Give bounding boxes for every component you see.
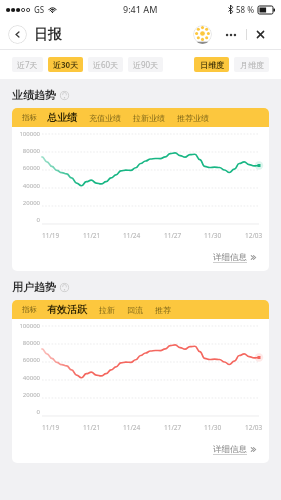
button[interactable]: 总业绩 — [47, 111, 77, 124]
staticText: 近90天 — [133, 59, 159, 70]
button[interactable]: Brand logo — [193, 25, 212, 44]
staticText: 日维度 — [200, 60, 224, 70]
staticText: 近7天 — [17, 59, 38, 70]
staticText: 近30天 — [53, 59, 79, 70]
staticText: 业绩趋势 — [12, 88, 56, 102]
button[interactable]: 指标 — [22, 305, 37, 314]
staticText: GS — [34, 4, 45, 15]
staticText: 回流 — [127, 305, 143, 315]
button[interactable]: 推荐 — [155, 305, 171, 315]
button[interactable]: 指标 — [22, 113, 37, 122]
button[interactable]: 日维度 — [194, 57, 229, 72]
button[interactable]: More options — [216, 25, 246, 44]
staticText: 11/27 — [164, 231, 182, 240]
staticText: 推荐 — [155, 305, 171, 315]
button[interactable]: Back — [8, 25, 27, 44]
staticText: 11/24 — [123, 231, 141, 240]
button[interactable]: 充值业绩 — [89, 113, 121, 123]
staticText: 58 % — [236, 4, 255, 15]
button[interactable]: 回流 — [127, 305, 143, 315]
staticText: 12/03 — [245, 231, 263, 240]
button[interactable]: 详细信息 — [213, 252, 257, 263]
staticText: 60000 — [22, 164, 40, 172]
staticText: 推荐业绩 — [177, 113, 209, 123]
staticText: 11/30 — [204, 423, 222, 432]
staticText: 80000 — [22, 339, 40, 347]
button[interactable]: 拉新 — [99, 305, 115, 315]
staticText: 11/27 — [164, 423, 182, 432]
button[interactable]: 有效活跃 — [47, 303, 87, 316]
button[interactable]: Close — [247, 25, 274, 44]
button[interactable]: 近7天 — [12, 57, 43, 72]
staticText: 100000 — [19, 322, 40, 330]
staticText: 11/19 — [42, 423, 60, 432]
staticText: 0 — [36, 216, 40, 224]
staticText: 11/19 — [42, 231, 60, 240]
staticText: 100000 — [19, 130, 40, 138]
staticText: 60000 — [22, 356, 40, 364]
staticText: 80000 — [22, 147, 40, 155]
staticText: 0 — [36, 408, 40, 416]
staticText: 近60天 — [93, 59, 119, 70]
button[interactable]: 详细信息 — [213, 444, 257, 455]
button[interactable]: 近90天 — [128, 57, 163, 72]
staticText: 12/03 — [245, 423, 263, 432]
staticText: 月维度 — [240, 60, 264, 70]
staticText: 20000 — [22, 199, 40, 207]
staticText: 9:41 AM — [123, 3, 158, 15]
button[interactable]: 推荐业绩 — [177, 113, 209, 123]
staticText: 40000 — [22, 182, 40, 190]
staticText: 日报 — [34, 26, 62, 44]
button[interactable]: 近30天 — [48, 57, 83, 72]
staticText: 有效活跃 — [47, 303, 87, 316]
staticText: 11/21 — [83, 423, 101, 432]
staticText: 40000 — [22, 374, 40, 382]
staticText: 20000 — [22, 391, 40, 399]
staticText: 拉新 — [99, 305, 115, 315]
staticText: 充值业绩 — [89, 113, 121, 123]
staticText: 11/24 — [123, 423, 141, 432]
staticText: 总业绩 — [47, 111, 77, 124]
button[interactable]: 近60天 — [88, 57, 123, 72]
staticText: 11/30 — [204, 231, 222, 240]
staticText: 详细信息 — [213, 252, 247, 263]
button[interactable]: 月维度 — [234, 57, 269, 72]
staticText: 11/21 — [83, 231, 101, 240]
staticText: 详细信息 — [213, 444, 247, 455]
button[interactable]: 拉新业绩 — [133, 113, 165, 123]
staticText: 用户趋势 — [12, 280, 56, 294]
staticText: 拉新业绩 — [133, 113, 165, 123]
